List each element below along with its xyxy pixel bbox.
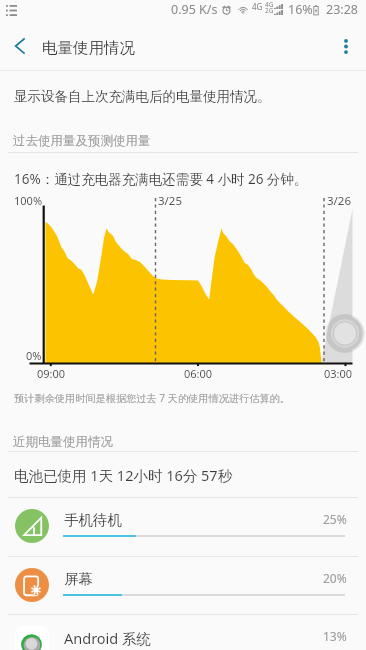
staticText: 16% bbox=[288, 1, 313, 18]
staticText: 23:28 bbox=[326, 1, 358, 18]
staticText: 预计剩余使用时间是根据您过去 7 天的使用情况进行估算的。 bbox=[14, 391, 290, 405]
staticText: 0.95 K/s bbox=[171, 1, 218, 18]
staticText: 近期电量使用情况 bbox=[13, 434, 113, 450]
staticText: 20% bbox=[323, 570, 347, 586]
staticText: 25% bbox=[323, 511, 347, 527]
staticText: 09:00 bbox=[37, 366, 66, 381]
staticText: 显示设备自上次充满电后的电量使用情况。 bbox=[14, 88, 271, 105]
staticText: 03:00 bbox=[324, 366, 353, 381]
button[interactable]: Back bbox=[0, 22, 40, 70]
staticText: 过去使用量及预测使用量 bbox=[13, 133, 151, 149]
button[interactable]: More options bbox=[326, 22, 366, 70]
staticText: 4G bbox=[252, 1, 263, 12]
staticText: 2G bbox=[265, 6, 274, 15]
staticText: 4G bbox=[265, 0, 274, 9]
button[interactable]: Android 系统 bbox=[0, 614, 366, 650]
staticText: Android 系统 bbox=[64, 628, 152, 648]
staticText: 电量使用情况 bbox=[42, 38, 135, 58]
staticText: 3/25 bbox=[158, 193, 183, 209]
staticText: 电池已使用 1天 12小时 16分 57秒 bbox=[14, 465, 233, 485]
staticText: 0% bbox=[26, 348, 42, 363]
staticText: 3/26 bbox=[327, 193, 352, 209]
staticText: 16%：通过充电器充满电还需要 4 小时 26 分钟。 bbox=[14, 170, 308, 188]
staticText: 13% bbox=[323, 628, 347, 644]
staticText: 手机待机 bbox=[64, 511, 122, 529]
staticText: 06:00 bbox=[184, 366, 213, 381]
button[interactable]: 手机待机 bbox=[0, 497, 366, 556]
staticText: 100% bbox=[14, 193, 43, 208]
button[interactable]: 屏幕 bbox=[0, 556, 366, 615]
staticText: 屏幕 bbox=[64, 570, 93, 588]
